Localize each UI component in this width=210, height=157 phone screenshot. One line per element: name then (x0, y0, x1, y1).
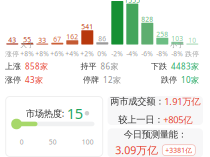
staticText: 1555 (124, 0, 140, 5)
staticText: 50 (49, 137, 57, 146)
staticText: 涨停 (5, 50, 19, 58)
button[interactable]: 市场热度: (6, 96, 103, 156)
staticText: 162 (66, 32, 78, 41)
staticText: 258 (156, 30, 168, 39)
staticText: 跌停 (161, 75, 177, 85)
staticText: 0% (97, 49, 107, 58)
staticText: 541 (81, 22, 93, 31)
staticText: 4483家 (171, 61, 199, 72)
staticText: 86家 (100, 61, 118, 72)
staticText: 两市成交额： (110, 96, 164, 107)
staticText: +8% (20, 49, 34, 58)
staticText: 100 (82, 137, 94, 146)
staticText: 下跌 (151, 61, 167, 71)
staticText: 持平 (80, 61, 96, 71)
staticText: +805亿 (163, 113, 192, 126)
staticText: 103 (171, 34, 183, 43)
staticText: 上涨 (5, 61, 21, 71)
staticText: 今日预测量能： (124, 129, 187, 140)
button[interactable]: 今日预测量能： (108, 128, 203, 157)
staticText: 3.09万亿 (115, 143, 158, 157)
staticText: 15 (67, 103, 83, 123)
staticText: +8% (35, 49, 49, 58)
staticText: 10 (188, 36, 196, 45)
staticText: 大于 (20, 41, 34, 49)
staticText: 12家 (103, 75, 121, 85)
staticText: 涨停 (5, 75, 21, 85)
staticText: 858家 (25, 61, 48, 72)
staticText: 0 (20, 137, 24, 146)
staticText: 1.91万亿 (164, 95, 200, 107)
staticText: 828 (141, 15, 153, 24)
staticText: 小于 (170, 41, 184, 49)
staticText: 较上一日： (118, 114, 163, 125)
staticText: 跌停 (185, 50, 199, 58)
staticText: 市场热度: (26, 107, 65, 119)
button[interactable]: 两市成交额： (108, 96, 203, 125)
staticText: -4% (126, 49, 138, 58)
staticText: -8% (156, 49, 168, 58)
staticText: +4% (65, 49, 79, 58)
staticText: 43 (8, 35, 16, 44)
staticText: +2% (80, 49, 94, 58)
staticText: +6% (50, 49, 64, 58)
staticText: +3381亿 (165, 146, 192, 155)
staticText: 86 (98, 34, 106, 43)
staticText: 10家 (181, 75, 199, 85)
staticText: 67 (53, 35, 61, 44)
staticText: -2% (111, 49, 123, 58)
staticText: -6% (141, 49, 153, 58)
staticText: 1654 (109, 0, 125, 2)
staticText: 33 (38, 36, 46, 45)
staticText: 停牌 (83, 75, 99, 85)
staticText: 43家 (25, 75, 43, 85)
staticText: -8% (171, 49, 183, 58)
staticText: 55 (23, 35, 31, 44)
